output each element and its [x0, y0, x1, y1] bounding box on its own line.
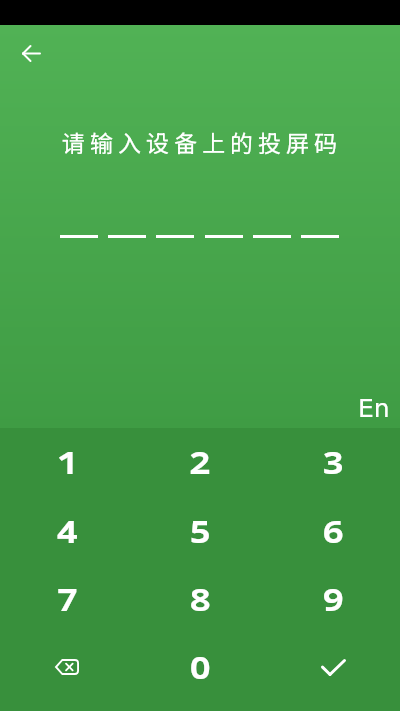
- button[interactable]: 5: [134, 497, 267, 565]
- button[interactable]: 4: [0, 497, 134, 565]
- staticText: 8: [190, 581, 211, 618]
- button[interactable]: Back: [8, 30, 54, 76]
- button[interactable]: 9: [267, 565, 400, 633]
- staticText: 1: [57, 444, 78, 481]
- button[interactable]: 6: [267, 497, 400, 565]
- staticText: 4: [57, 513, 78, 550]
- staticText: 2: [190, 444, 211, 481]
- button[interactable]: 7: [0, 565, 134, 633]
- staticText: 5: [190, 513, 211, 550]
- button[interactable]: Backspace: [0, 633, 134, 701]
- staticText: 请输入设备上的投屏码: [2, 125, 400, 158]
- button[interactable]: 0: [134, 633, 267, 701]
- button[interactable]: 2: [134, 428, 267, 497]
- staticText: 7: [57, 581, 78, 618]
- button[interactable]: 1: [0, 428, 134, 497]
- button[interactable]: 3: [267, 428, 400, 497]
- staticText: 0: [190, 649, 211, 686]
- staticText: 9: [323, 581, 344, 618]
- staticText: 6: [323, 513, 344, 550]
- button[interactable]: 8: [134, 565, 267, 633]
- button[interactable]: Confirm: [267, 633, 400, 701]
- button[interactable]: En: [358, 394, 400, 428]
- staticText: 3: [323, 444, 344, 481]
